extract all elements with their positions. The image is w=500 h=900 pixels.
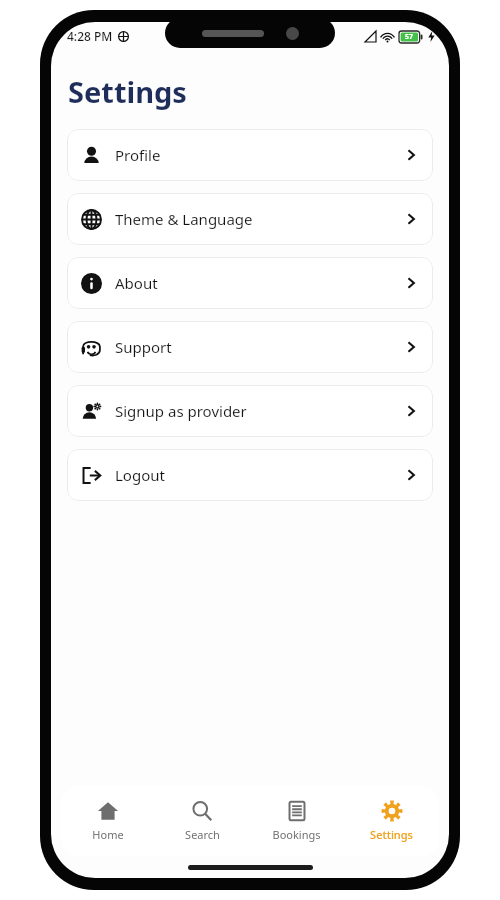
staticText: Settings [68,72,187,111]
button[interactable]: Search [155,786,249,856]
staticText: 57 [405,32,414,42]
staticText: Search [185,827,220,842]
button[interactable]: Bookings [249,786,344,856]
button[interactable]: About [67,257,433,309]
staticText: About [115,273,158,293]
staticText: Home [92,827,124,842]
staticText: Settings [370,827,413,842]
staticText: Signup as provider [115,401,247,421]
staticText: Support [115,337,172,357]
button[interactable]: Support [67,321,433,373]
button[interactable]: Settings [344,786,439,856]
staticText: Theme & Language [115,209,253,229]
staticText: 4:28 PM [67,28,113,44]
button[interactable]: Theme & Language [67,193,433,245]
staticText: Bookings [272,827,321,842]
button[interactable]: Home [61,786,155,856]
staticText: Logout [115,465,165,485]
button[interactable]: Profile [67,129,433,181]
button[interactable]: Logout [67,449,433,501]
button[interactable]: Signup as provider [67,385,433,437]
staticText: Profile [115,145,161,165]
